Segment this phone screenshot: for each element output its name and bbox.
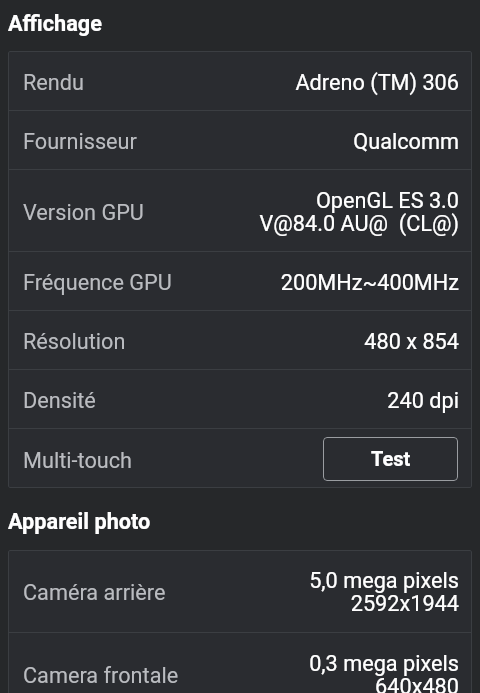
staticText: 480 x 854 (134, 329, 459, 354)
staticText: Version GPU (23, 200, 144, 225)
staticText: Camera frontale (23, 663, 179, 688)
staticText: Caméra arrière (23, 580, 166, 605)
staticText: Affichage (8, 11, 102, 36)
staticText: 0,3 mega pixels 640x480 (187, 651, 459, 693)
staticText: 5,0 mega pixels 2592x1944 (174, 568, 459, 617)
staticText: Adreno (TM) 306 (93, 70, 459, 95)
button[interactable]: Camera frontale (8, 633, 472, 693)
staticText: 200MHz~400MHz (180, 270, 459, 295)
staticText: Qualcomm (145, 129, 459, 154)
staticText: Fréquence GPU (23, 270, 172, 295)
staticText: Densité (23, 388, 96, 413)
button[interactable]: Résolution (8, 311, 472, 369)
staticText: OpenGL ES 3.0 V@84.0 AU@ (CL@) (152, 188, 459, 237)
button[interactable]: Densité (8, 370, 472, 428)
button[interactable]: Fournisseur (8, 111, 472, 169)
staticText: 240 dpi (104, 388, 459, 413)
staticText: Appareil photo (8, 509, 151, 534)
button[interactable]: Fréquence GPU (8, 252, 472, 310)
button[interactable]: Test (323, 437, 458, 481)
staticText: Résolution (23, 329, 126, 354)
button[interactable]: Version GPU (8, 170, 472, 251)
staticText: Multi-touch (23, 448, 133, 473)
button[interactable]: Multi-touch (8, 429, 472, 488)
button[interactable]: Caméra arrière (8, 550, 472, 632)
staticText: Fournisseur (23, 129, 137, 154)
staticText: Test (371, 447, 411, 470)
button[interactable]: Rendu (8, 51, 472, 110)
staticText: Rendu (23, 70, 85, 95)
